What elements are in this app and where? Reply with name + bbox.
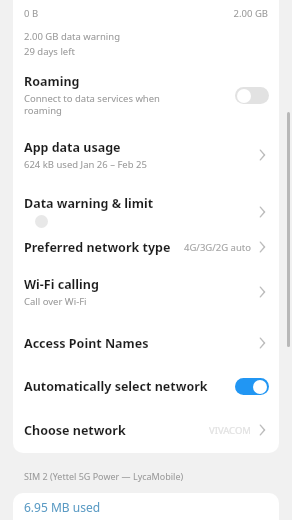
- staticText: Preferred network type: [24, 239, 171, 256]
- button[interactable]: Wi-Fi calling: [13, 274, 279, 310]
- staticText: Data warning & limit: [24, 195, 154, 212]
- staticText: VIVACOM: [209, 424, 251, 437]
- staticText: Automatically select network: [24, 378, 208, 395]
- staticText: Access Point Names: [24, 335, 149, 352]
- button[interactable]: Toggle off: [235, 87, 269, 104]
- staticText: App data usage: [24, 139, 121, 156]
- staticText: 2.00 GB: [233, 7, 268, 20]
- staticText: 6.95 MB used: [24, 499, 101, 515]
- button[interactable]: Access Point Names: [13, 332, 279, 354]
- staticText: Connect to data services when roaming: [24, 92, 160, 117]
- staticText: Roaming: [24, 73, 80, 90]
- button[interactable]: Automatically select network: [13, 376, 279, 397]
- staticText: 2.00 GB data warning: [24, 30, 121, 43]
- staticText: 624 kB used Jan 26 – Feb 25: [24, 158, 147, 171]
- button[interactable]: App data usage: [13, 137, 279, 181]
- staticText: Wi-Fi calling: [24, 276, 99, 293]
- button[interactable]: Roaming: [13, 71, 279, 127]
- staticText: 29 days left: [24, 45, 75, 58]
- staticText: SIM 2 (Yettel 5G Power — LycaMobile): [24, 470, 184, 482]
- button[interactable]: Choose network: [13, 419, 279, 441]
- button[interactable]: Data warning & limit: [13, 193, 279, 230]
- staticText: Choose network: [24, 422, 126, 439]
- button[interactable]: Preferred network type: [13, 236, 279, 258]
- staticText: 0 B: [24, 7, 39, 20]
- staticText: 4G/3G/2G auto: [184, 241, 251, 254]
- staticText: Call over Wi-Fi: [24, 295, 87, 308]
- button[interactable]: Toggle on: [235, 378, 269, 395]
